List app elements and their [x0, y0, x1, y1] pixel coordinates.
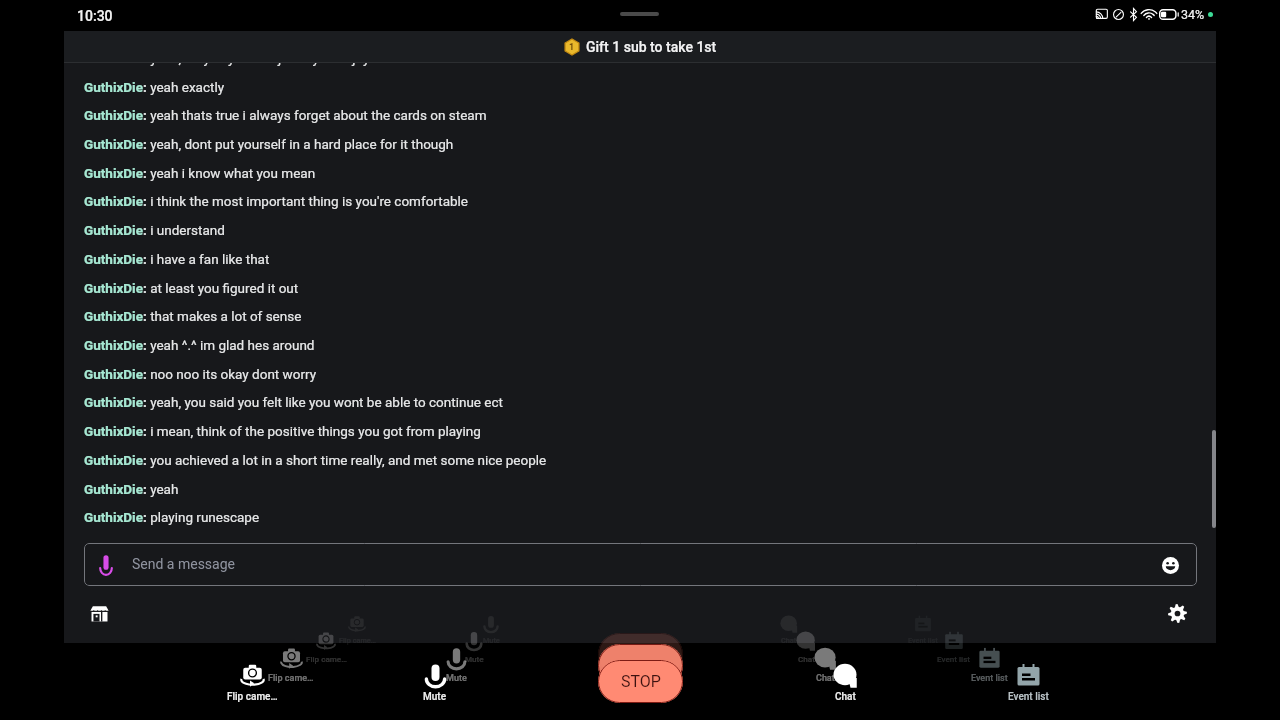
button[interactable]: Channel store	[84, 598, 114, 628]
staticText: GuthixDie: that makes a lot of sense	[84, 308, 302, 324]
staticText: Send a message	[132, 556, 235, 572]
staticText: Gift 1 sub to take 1st	[586, 39, 717, 55]
button[interactable]: Flip came…	[207, 662, 297, 710]
staticText: Mute	[465, 654, 484, 663]
staticText: Mute	[446, 673, 467, 684]
staticText: GuthixDie: yeah ^.^ im glad hes around	[84, 337, 315, 353]
staticText: Flip came…	[227, 691, 278, 703]
staticText: GuthixDie: yeah, maybe you can just try …	[84, 63, 381, 66]
staticText: Chat	[816, 673, 835, 684]
button[interactable]: Settings	[1162, 598, 1192, 628]
staticText: Chat	[835, 691, 856, 703]
staticText: GuthixDie: i think the most important th…	[84, 193, 469, 209]
button[interactable]: Event list	[983, 662, 1073, 710]
staticText: GuthixDie: yeah, dont put yourself in a …	[84, 136, 454, 152]
staticText: GuthixDie: yeah i know what you mean	[84, 165, 316, 181]
staticText: 34%	[1181, 7, 1205, 22]
button[interactable]: 1	[64, 31, 1216, 62]
button[interactable]: STOP	[598, 660, 683, 703]
staticText: Chat	[798, 654, 815, 663]
button[interactable]: Send a message	[84, 543, 1197, 586]
staticText: GuthixDie: i mean, think of the positive…	[84, 423, 481, 439]
staticText: GuthixDie: yeah thats true i always forg…	[84, 107, 487, 123]
staticText: GuthixDie: noo noo its okay dont worry	[84, 366, 317, 382]
staticText: STOP	[621, 672, 661, 691]
staticText: 1	[569, 42, 575, 53]
staticText: Event list	[908, 636, 938, 645]
staticText: Mute	[423, 691, 447, 703]
button[interactable]: Chat	[800, 662, 890, 710]
staticText: Event list	[971, 673, 1008, 684]
staticText: GuthixDie: playing runescape	[84, 509, 260, 525]
staticText: GuthixDie: yeah, you said you felt like …	[84, 394, 503, 410]
staticText: GuthixDie: at least you figured it out	[84, 280, 299, 296]
staticText: Flip came…	[339, 636, 376, 645]
staticText: GuthixDie: yeah exactly	[84, 79, 225, 95]
staticText: GuthixDie: i have a fan like that	[84, 251, 270, 267]
staticText: Event list	[937, 654, 971, 663]
staticText: Mute	[483, 636, 500, 645]
staticText: GuthixDie: i understand	[84, 222, 225, 238]
staticText: Flip came…	[306, 654, 347, 663]
staticText: 10:30	[77, 8, 113, 24]
button[interactable]: Mute	[390, 662, 480, 710]
staticText: GuthixDie: yeah	[84, 481, 179, 497]
button[interactable]: Emotes	[1158, 553, 1182, 577]
staticText: Flip came…	[268, 673, 314, 684]
staticText: Event list	[1008, 691, 1049, 703]
staticText: Chat	[781, 636, 797, 645]
staticText: GuthixDie: you achieved a lot in a short…	[84, 452, 547, 468]
